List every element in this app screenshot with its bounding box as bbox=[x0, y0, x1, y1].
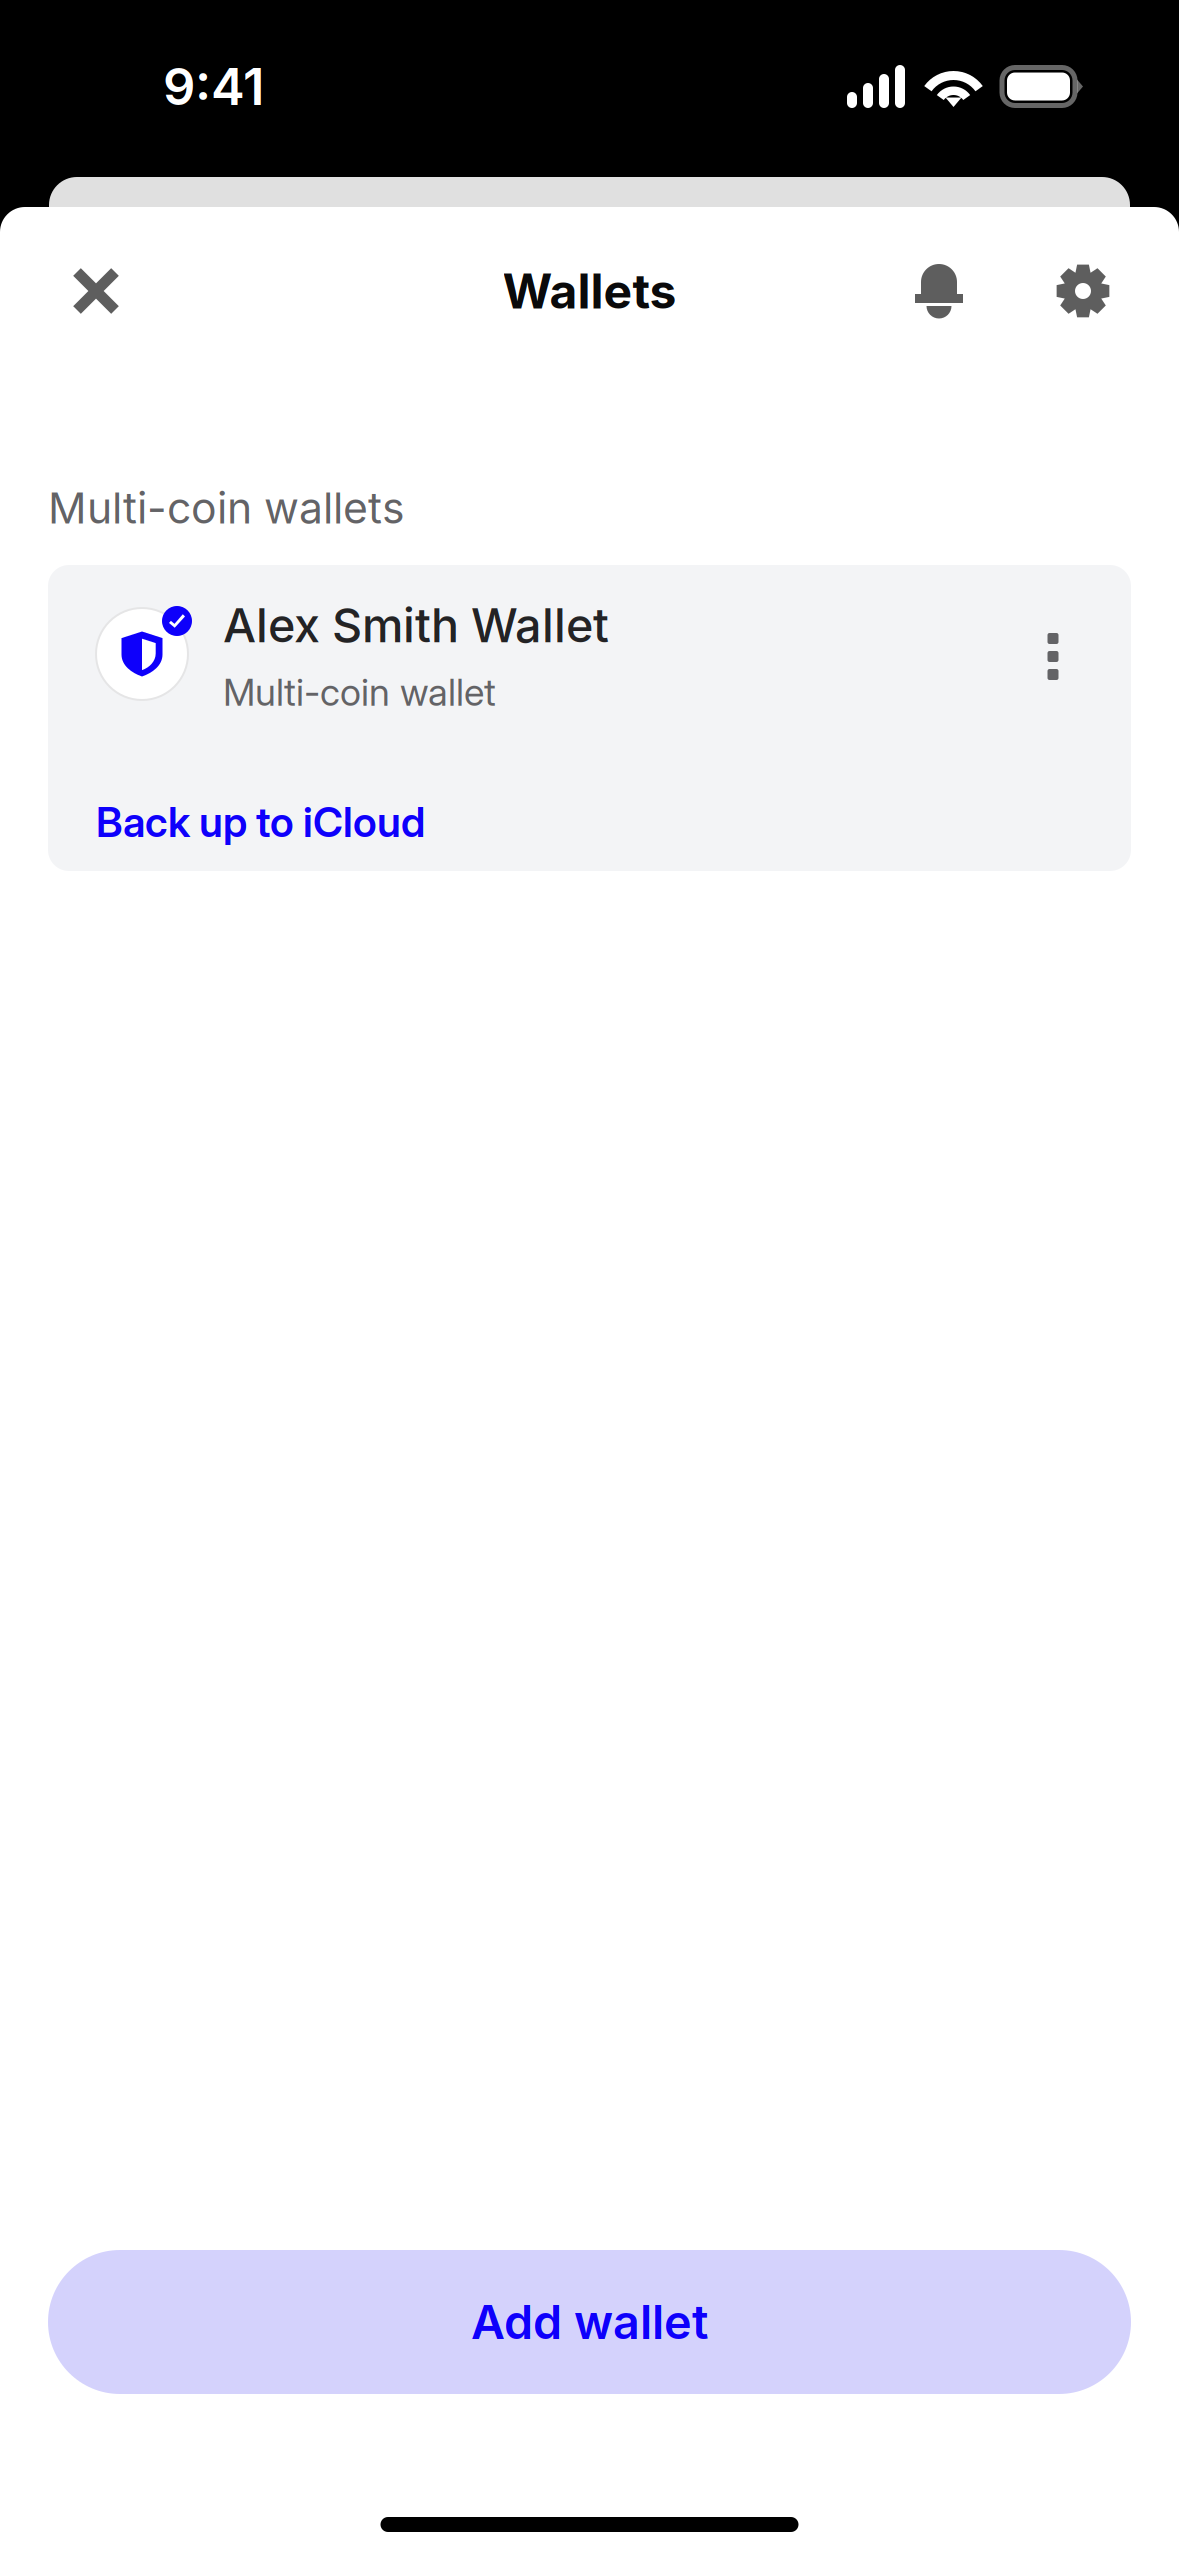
button[interactable]: Notifications bbox=[891, 243, 987, 339]
button[interactable]: Close bbox=[48, 243, 144, 339]
staticText: Multi-coin wallets bbox=[48, 482, 405, 534]
button[interactable]: Add wallet bbox=[48, 2250, 1131, 2394]
staticText: Wallets bbox=[502, 262, 676, 320]
button[interactable]: Settings bbox=[1035, 243, 1131, 339]
staticText: Multi-coin wallet bbox=[223, 669, 496, 715]
staticText: Alex Smith Wallet bbox=[223, 597, 609, 653]
staticText: Back up to iCloud bbox=[96, 797, 425, 847]
staticText: 9:41 bbox=[163, 56, 264, 117]
button[interactable]: Alex Smith Wallet bbox=[48, 565, 1131, 871]
button[interactable]: Back up to iCloud bbox=[96, 797, 425, 847]
staticText: Add wallet bbox=[471, 2294, 708, 2350]
